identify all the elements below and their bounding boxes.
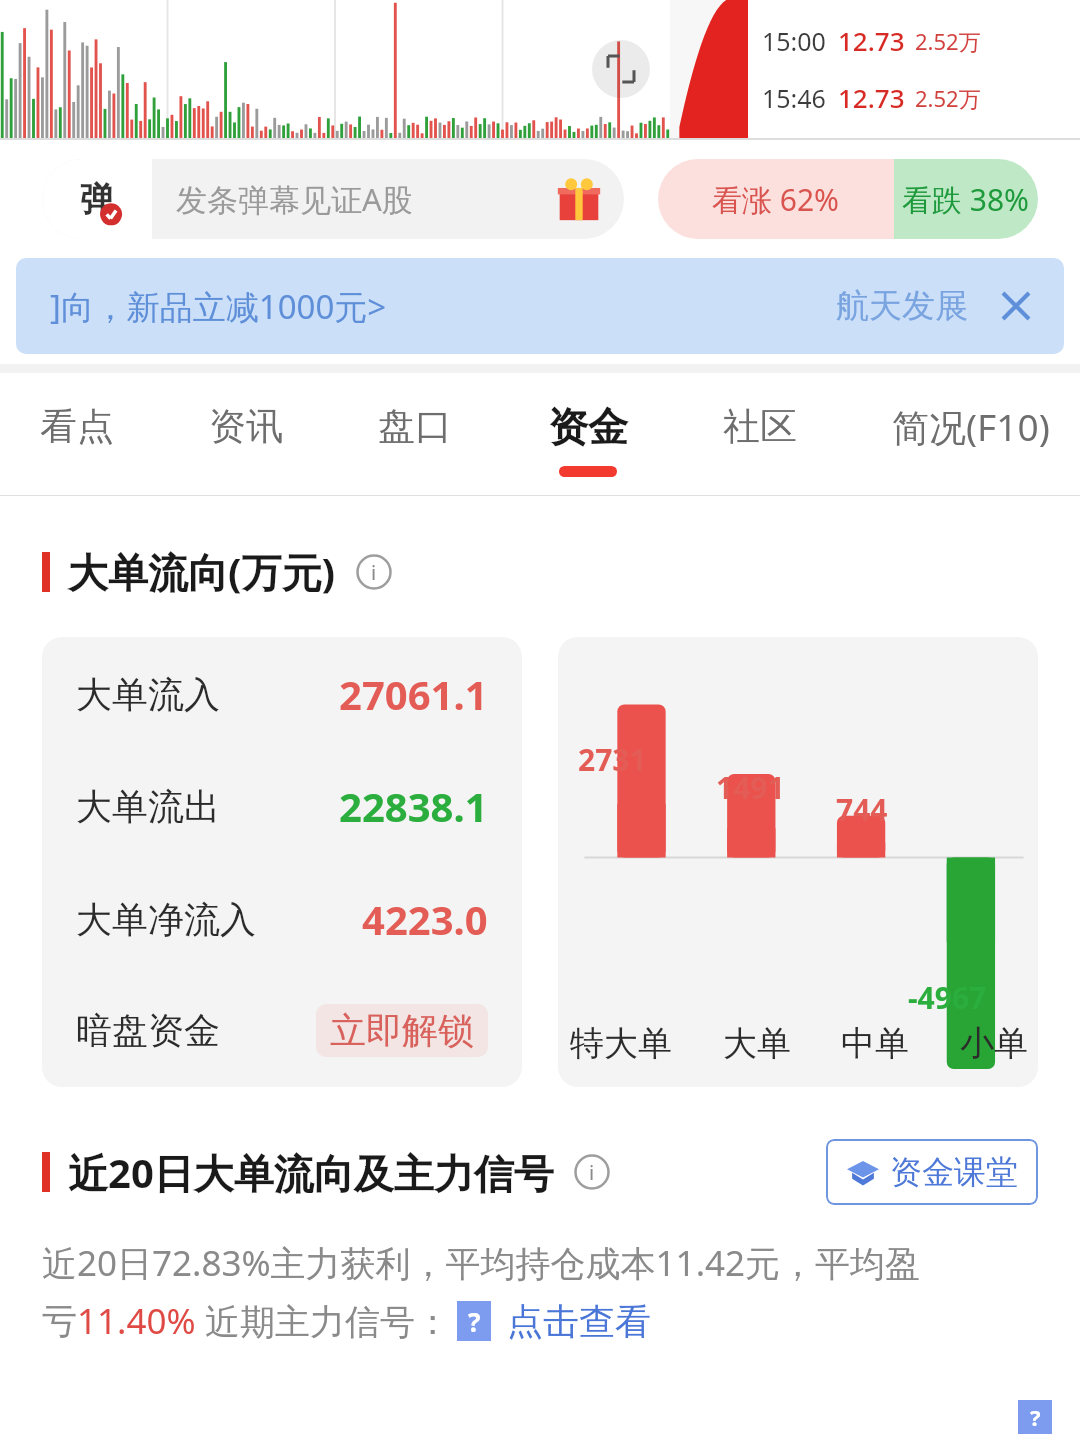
button[interactable]: Signal help — [457, 1301, 491, 1341]
staticText: ]向，新品立减1000元> — [50, 284, 387, 329]
staticText: 2731 — [578, 739, 647, 780]
staticText: 立即解锁 — [330, 1008, 474, 1053]
button[interactable]: 社区 — [723, 373, 797, 495]
button[interactable]: 盘口 — [378, 373, 452, 495]
staticText: 大单 — [723, 1022, 791, 1065]
staticText: 27061.1 — [339, 667, 488, 721]
staticText: ? — [468, 1304, 481, 1339]
staticText: 亏 — [42, 1299, 77, 1343]
staticText: 大单流出 — [76, 784, 220, 829]
staticText: 社区 — [723, 403, 797, 450]
staticText: 看点 — [40, 403, 114, 450]
staticText: 航天发展 — [836, 285, 968, 327]
staticText: 资讯 — [209, 403, 283, 450]
staticText: 特大单 — [570, 1022, 672, 1065]
button[interactable]: Help — [1018, 1400, 1052, 1434]
staticText: 744 — [836, 789, 888, 830]
staticText: 12.73 — [838, 23, 905, 58]
button[interactable]: 看涨 62% — [658, 159, 1038, 239]
button[interactable]: 简况(F10) — [892, 373, 1050, 495]
staticText: 发条弹幕见证A股 — [176, 178, 413, 220]
staticText: 看涨 62% — [712, 179, 840, 220]
staticText: i — [589, 1159, 595, 1186]
staticText: 中单 — [841, 1022, 909, 1065]
button[interactable]: Fullscreen — [592, 40, 650, 98]
button[interactable]: 2731 — [558, 637, 1038, 1087]
button[interactable]: 点击查看 — [507, 1299, 651, 1344]
staticText: 近20日大单流向及主力信号 — [68, 1145, 554, 1200]
staticText: 暗盘资金 — [76, 1008, 220, 1053]
staticText: 资金 — [548, 402, 628, 452]
staticText: 弹 — [80, 178, 114, 221]
staticText: i — [371, 559, 377, 586]
staticText: ? — [1030, 1402, 1041, 1432]
staticText: -4967 — [908, 977, 987, 1018]
button[interactable]: Close — [994, 284, 1038, 328]
staticText: 近期主力信号： — [196, 1297, 451, 1345]
staticText: 2.52万 — [915, 83, 981, 113]
staticText: 看跌 38% — [902, 179, 1030, 220]
staticText: 1491 — [716, 767, 785, 808]
button[interactable]: Info — [356, 554, 392, 590]
button[interactable]: 资金课堂 — [826, 1139, 1038, 1205]
button[interactable]: 大单流入 — [42, 637, 522, 1087]
staticText: 15:00 — [762, 24, 826, 58]
button[interactable]: 资金 — [548, 373, 628, 495]
staticText: 12.73 — [838, 80, 905, 115]
button[interactable]: Info — [574, 1154, 610, 1190]
staticText: 4223.0 — [362, 892, 488, 946]
button[interactable]: 弹 — [42, 159, 624, 239]
staticText: 大单流向(万元) — [68, 544, 336, 599]
staticText: 2.52万 — [915, 26, 981, 56]
button[interactable]: 资讯 — [209, 373, 283, 495]
staticText: 大单净流入 — [76, 897, 256, 942]
button[interactable]: ]向，新品立减1000元> — [16, 258, 1064, 354]
button[interactable]: 立即解锁 — [316, 1004, 488, 1057]
staticText: 22838.1 — [339, 779, 488, 833]
staticText: 15:46 — [762, 81, 826, 115]
staticText: 11.40% — [77, 1297, 196, 1345]
staticText: 简况(F10) — [892, 401, 1050, 452]
staticText: 点击查看 — [507, 1299, 651, 1344]
staticText: 资金课堂 — [890, 1152, 1018, 1192]
staticText: 近20日72.83%主力获利，平均持仓成本11.42元，平均盈 — [42, 1239, 921, 1287]
staticText: 小单 — [960, 1022, 1028, 1065]
staticText: 大单流入 — [76, 672, 220, 717]
staticText: 盘口 — [378, 403, 452, 450]
button[interactable]: 看点 — [40, 373, 114, 495]
